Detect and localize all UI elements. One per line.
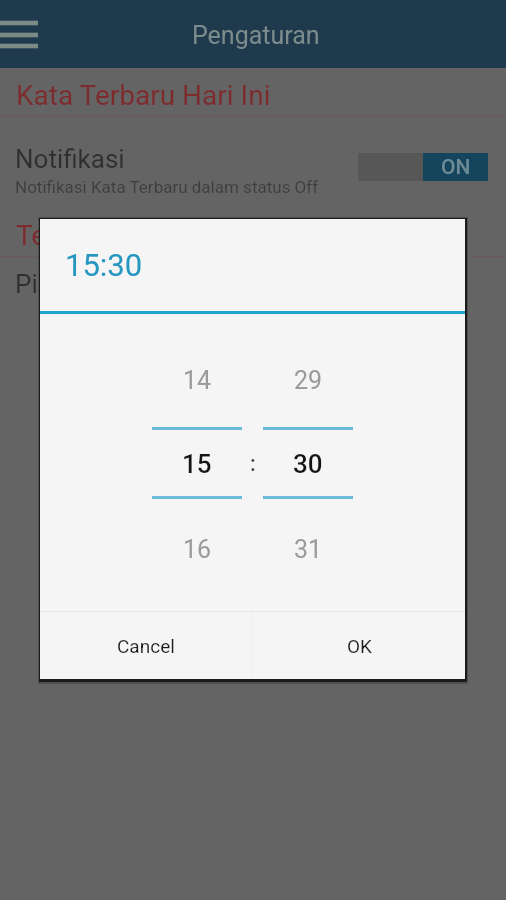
staticText: Notifikasi xyxy=(15,144,125,174)
staticText: 15 xyxy=(182,449,212,479)
staticText: 31 xyxy=(294,535,323,564)
button[interactable]: 30 xyxy=(263,447,353,481)
button[interactable]: 31 xyxy=(263,533,353,565)
staticText: 29 xyxy=(294,366,323,395)
staticText: ON xyxy=(441,155,471,180)
staticText: Tentang xyxy=(16,219,118,252)
staticText: 30 xyxy=(293,449,323,479)
button[interactable]: 14 xyxy=(152,364,242,396)
staticText: 14 xyxy=(183,366,212,395)
staticText: 16 xyxy=(183,535,212,564)
button[interactable]: Pilih Waktu Notifikasi xyxy=(0,257,506,317)
button[interactable]: Notifikasi switch xyxy=(358,153,488,181)
button[interactable]: 16 xyxy=(152,533,242,565)
staticText: Cancel xyxy=(117,635,175,657)
button[interactable]: Menu xyxy=(0,12,44,56)
staticText: : xyxy=(250,451,256,477)
staticText: OK xyxy=(347,635,372,657)
button[interactable]: Notifikasi xyxy=(0,116,506,205)
staticText: 15:30 xyxy=(65,247,143,283)
button[interactable]: 15 xyxy=(152,447,242,481)
staticText: Pilih Waktu Notifikasi xyxy=(15,269,261,299)
button[interactable]: 29 xyxy=(263,364,353,396)
button[interactable]: Cancel xyxy=(40,612,252,679)
button[interactable]: OK xyxy=(253,612,465,679)
staticText: Notifikasi Kata Terbaru dalam status Off xyxy=(15,177,319,197)
staticText: Kata Terbaru Hari Ini xyxy=(16,79,271,112)
staticText: Pengaturan xyxy=(192,21,320,50)
